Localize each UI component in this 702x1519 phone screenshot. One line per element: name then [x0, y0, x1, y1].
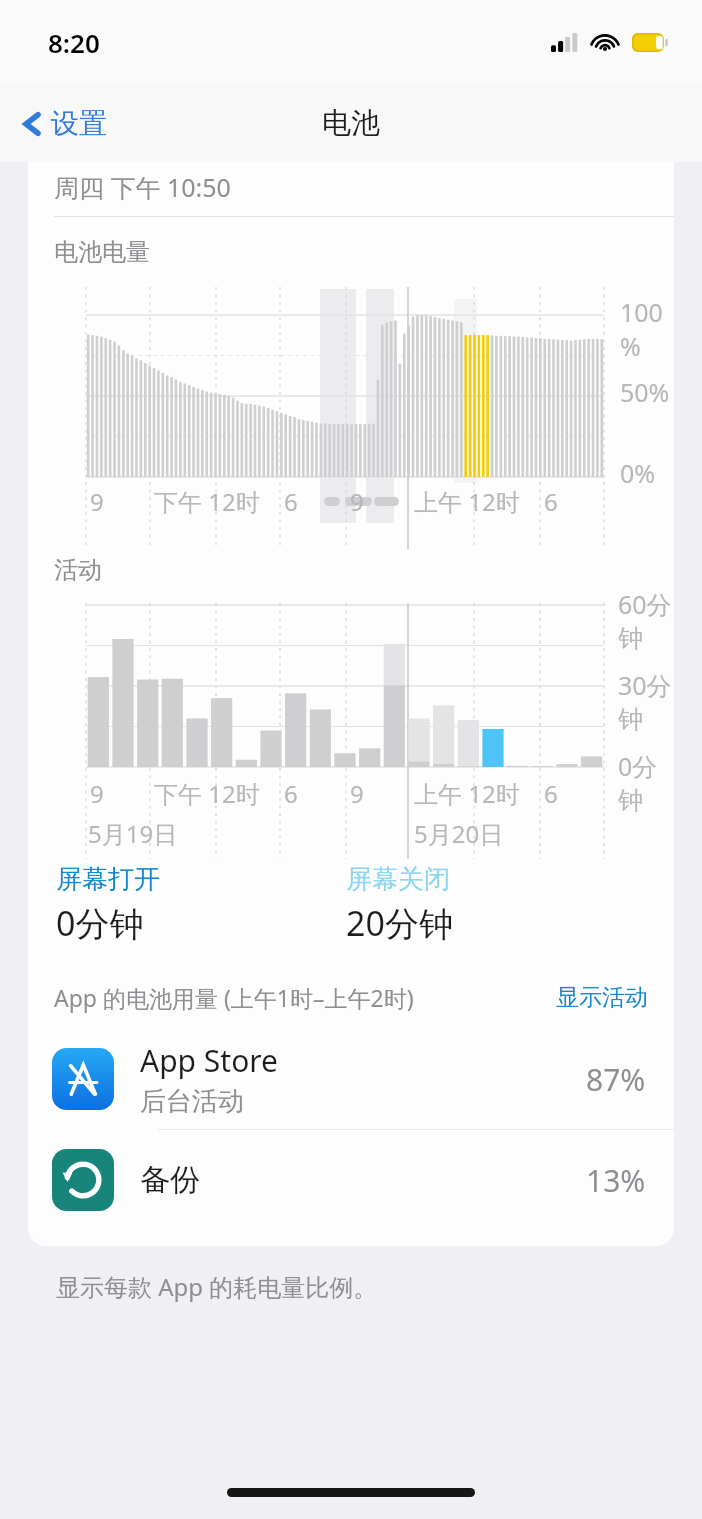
staticText: 电池电量 — [54, 237, 150, 267]
staticText: 屏幕关闭 — [346, 863, 450, 896]
staticText: 60分钟 — [618, 587, 674, 655]
staticText: 9 — [90, 485, 104, 518]
staticText: 上午 12时 — [414, 777, 520, 810]
staticText: 显示活动 — [556, 983, 648, 1012]
staticText: 9 — [350, 485, 364, 518]
staticText: 周四 下午 10:50 — [54, 170, 231, 204]
staticText: 87% — [586, 1059, 646, 1100]
staticText: 显示每款 App 的耗电量比例。 — [56, 1270, 378, 1303]
button[interactable]: 设置 — [18, 98, 111, 149]
staticText: 30分钟 — [618, 668, 674, 736]
staticText: 设置 — [51, 106, 107, 141]
staticText: 20分钟 — [346, 900, 453, 946]
staticText: App Store — [140, 1040, 279, 1081]
staticText: 50% — [620, 375, 670, 409]
staticText: 备份 — [140, 1161, 200, 1199]
staticText: 100% — [620, 295, 674, 363]
button[interactable]: 显示活动 — [556, 983, 648, 1012]
staticText: 9 — [350, 777, 364, 810]
staticText: 0% — [620, 456, 656, 490]
button[interactable]: 备份 — [28, 1130, 674, 1230]
staticText: 0分钟 — [618, 749, 674, 817]
staticText: 后台活动 — [140, 1085, 244, 1118]
other: 备份 — [52, 1149, 114, 1211]
staticText: 0分钟 — [56, 900, 144, 946]
staticText: 9 — [90, 777, 104, 810]
staticText: 上午 12时 — [414, 485, 520, 518]
staticText: 6 — [284, 777, 298, 810]
staticText: 5月20日 — [414, 817, 504, 850]
staticText: 13% — [586, 1160, 646, 1201]
staticText: 下午 12时 — [154, 777, 260, 810]
staticText: 6 — [544, 485, 558, 518]
staticText: 8:20 — [48, 25, 100, 60]
other: App Store — [52, 1048, 114, 1110]
staticText: 5月19日 — [88, 817, 178, 850]
staticText: 6 — [544, 777, 558, 810]
button[interactable]: App Store — [28, 1029, 674, 1129]
staticText: App 的电池用量 (上午1时–上午2时) — [54, 982, 414, 1013]
staticText: 活动 — [54, 555, 102, 585]
staticText: 屏幕打开 — [56, 863, 160, 896]
staticText: 6 — [284, 485, 298, 518]
staticText: 下午 12时 — [154, 485, 260, 518]
staticText: 电池 — [322, 105, 380, 142]
